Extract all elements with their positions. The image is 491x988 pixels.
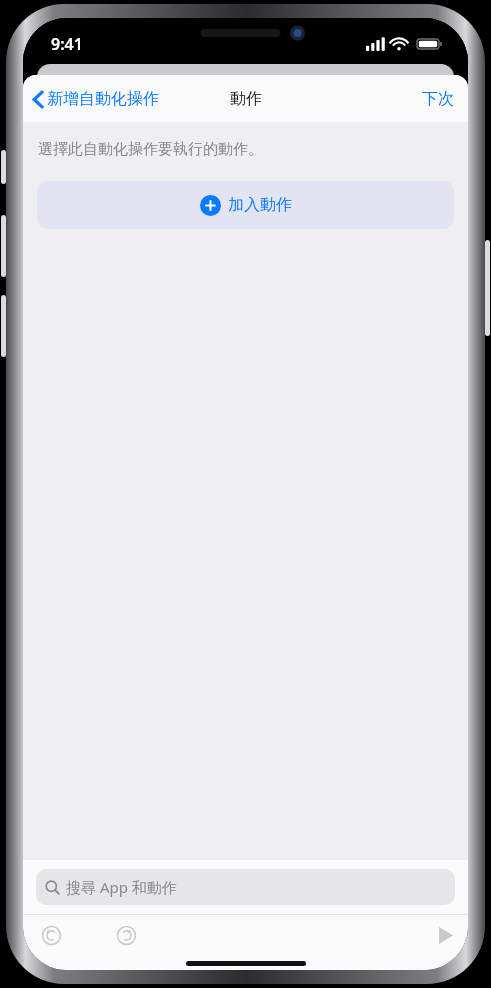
button[interactable]: 新增自動化操作 [23,83,167,115]
button[interactable]: Undo [33,917,70,954]
staticText: 選擇此自動化操作要執行的動作。 [38,140,263,159]
button[interactable]: 加入動作 [37,181,454,229]
button[interactable]: Run shortcut [423,919,468,952]
button[interactable]: Redo [108,917,145,954]
button[interactable]: 下次 [408,81,468,117]
staticText: 9:41 [51,33,83,55]
staticText: 下次 [422,89,454,109]
staticText: 新增自動化操作 [47,89,159,109]
staticText: 搜尋 App 和動作 [66,877,177,897]
staticText: 動作 [230,89,262,109]
staticText: 加入動作 [228,195,292,215]
button[interactable]: 搜尋 App 和動作 [36,869,455,905]
